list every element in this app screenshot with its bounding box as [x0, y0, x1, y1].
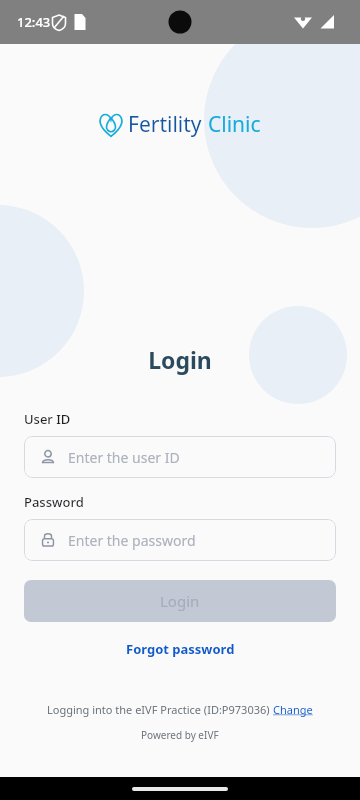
- button[interactable]: Change: [273, 702, 313, 717]
- staticText: Logging into the eIVF Practice (ID:P9730…: [47, 702, 273, 717]
- button[interactable]: Enter the password: [24, 519, 336, 561]
- staticText: Fertility: [128, 110, 202, 139]
- button[interactable]: Enter the user ID: [24, 436, 336, 478]
- staticText: Enter the user ID: [68, 448, 180, 467]
- staticText: Login: [160, 591, 200, 611]
- staticText: Change: [273, 702, 313, 717]
- staticText: 12:43: [17, 13, 51, 31]
- staticText: Clinic: [208, 110, 261, 139]
- staticText: Enter the password: [68, 531, 196, 550]
- button[interactable]: Forgot password: [120, 637, 241, 661]
- staticText: Password: [24, 493, 84, 511]
- staticText: User ID: [24, 410, 71, 428]
- staticText: Login: [0, 344, 360, 375]
- button[interactable]: Login: [24, 580, 336, 622]
- staticText: Powered by eIVF: [141, 728, 219, 742]
- staticText: Forgot password: [126, 640, 235, 658]
